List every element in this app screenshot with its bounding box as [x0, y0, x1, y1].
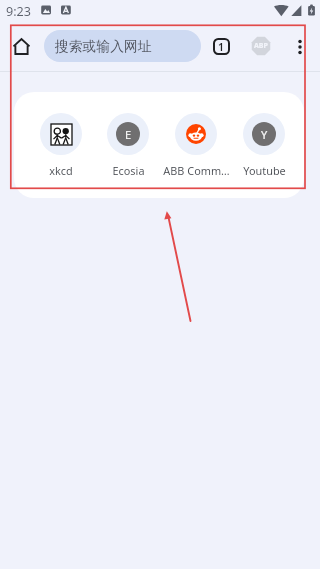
button[interactable]: xkcd	[27, 113, 95, 178]
staticText: 1	[218, 40, 225, 54]
button[interactable]: More options	[282, 29, 317, 64]
button[interactable]: E	[94, 113, 162, 178]
staticText: Y	[261, 127, 268, 142]
button[interactable]: 搜索或输入网址	[44, 30, 201, 62]
button[interactable]: ABB Comm…	[162, 113, 230, 178]
staticText: ABB Comm…	[163, 163, 230, 178]
button[interactable]: Home	[3, 28, 40, 65]
staticText: ABP	[254, 41, 268, 51]
staticText: 搜索或输入网址	[55, 38, 152, 55]
button[interactable]: AdBlock Plus	[243, 28, 278, 63]
button[interactable]: Y	[230, 113, 298, 178]
staticText: Ecosia	[112, 163, 145, 178]
staticText: E	[125, 127, 132, 142]
staticText: Youtube	[243, 163, 286, 178]
staticText: 9:23	[6, 3, 31, 20]
staticText: xkcd	[49, 163, 73, 178]
button[interactable]: Tabs	[204, 29, 239, 64]
